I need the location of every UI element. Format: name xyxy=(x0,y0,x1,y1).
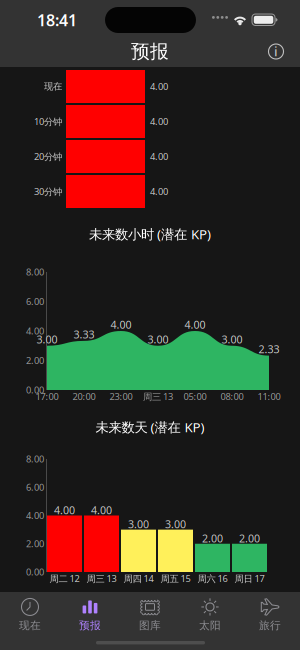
staticText: 3.00 xyxy=(221,332,242,346)
staticText: 20:00 xyxy=(72,390,95,403)
staticText: 3.00 xyxy=(165,517,186,531)
button[interactable]: 信息 xyxy=(262,37,290,65)
staticText: 20分钟 xyxy=(34,150,62,163)
staticText: 周五 15 xyxy=(160,572,190,585)
staticText: 4.00 xyxy=(26,325,44,337)
staticText: 太阳 xyxy=(199,619,221,632)
staticText: 6.00 xyxy=(26,295,44,308)
staticText: 周六 16 xyxy=(197,572,227,585)
staticText: 0.00 xyxy=(26,566,44,578)
staticText: 4.00 xyxy=(54,503,75,517)
staticText: 05:00 xyxy=(183,390,206,403)
staticText: i xyxy=(274,42,278,60)
staticText: 3.33 xyxy=(73,327,94,341)
staticText: 08:00 xyxy=(220,390,243,403)
button[interactable]: 现在 xyxy=(0,595,60,635)
staticText: 预报 xyxy=(79,619,101,632)
staticText: 图库 xyxy=(139,619,161,632)
button[interactable]: 预报 xyxy=(60,595,120,635)
staticText: 2.00 xyxy=(26,354,44,367)
staticText: 8.00 xyxy=(26,266,44,278)
staticText: 4.00 xyxy=(150,185,168,198)
staticText: 周二 12 xyxy=(49,572,79,585)
button[interactable]: 太阳 xyxy=(180,595,240,635)
button[interactable]: 旅行 xyxy=(240,595,300,635)
staticText: 4.00 xyxy=(150,115,168,128)
staticText: 10分钟 xyxy=(34,115,62,128)
staticText: 周三 13 xyxy=(86,572,116,585)
staticText: 未来数小时 (潜在 KP) xyxy=(89,225,211,243)
button[interactable]: 图库 xyxy=(120,595,180,635)
staticText: 2.33 xyxy=(258,342,279,356)
staticText: 周三 13 xyxy=(143,390,173,403)
staticText: 6.00 xyxy=(26,481,44,493)
staticText: 4.00 xyxy=(110,317,131,332)
staticText: 4.00 xyxy=(26,509,44,522)
staticText: 11:00 xyxy=(257,390,280,403)
staticText: 4.00 xyxy=(184,317,205,332)
staticText: 周日 17 xyxy=(234,572,264,585)
staticText: 0.00 xyxy=(26,384,44,396)
staticText: 30分钟 xyxy=(34,185,62,198)
staticText: 现在 xyxy=(44,81,62,92)
staticText: 8.00 xyxy=(26,453,44,465)
staticText: 4.00 xyxy=(150,150,168,163)
staticText: 预报 xyxy=(131,40,169,63)
staticText: 2.00 xyxy=(239,531,260,545)
staticText: 旅行 xyxy=(259,619,281,632)
staticText: 未来数天 (潜在 KP) xyxy=(95,418,204,436)
staticText: 4.00 xyxy=(91,503,112,517)
staticText: 3.00 xyxy=(147,332,168,346)
staticText: 3.00 xyxy=(36,332,57,346)
staticText: 18:41 xyxy=(37,9,77,31)
staticText: 23:00 xyxy=(109,390,132,403)
staticText: 4.00 xyxy=(150,80,168,93)
staticText: 2.00 xyxy=(202,531,223,545)
staticText: 3.00 xyxy=(128,517,149,531)
staticText: 17:00 xyxy=(35,390,58,403)
staticText: 现在 xyxy=(19,619,41,632)
staticText: 2.00 xyxy=(26,538,44,550)
staticText: 周四 14 xyxy=(123,572,153,585)
